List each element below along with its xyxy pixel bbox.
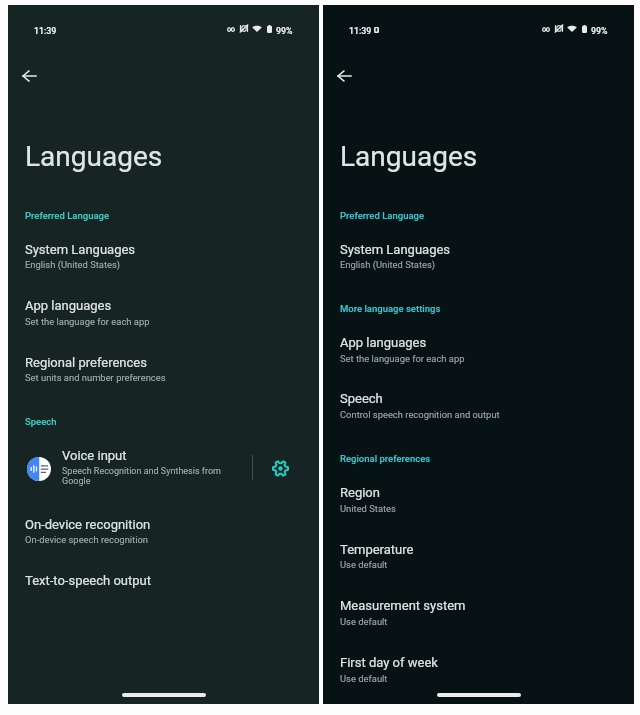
staticText: Use default: [340, 616, 388, 627]
button[interactable]: [323, 534, 634, 581]
staticText: Set the language for each app: [25, 316, 150, 327]
staticText: 11:39: [349, 26, 372, 36]
button[interactable]: [8, 565, 319, 595]
staticText: Region: [340, 485, 380, 500]
button[interactable]: Back: [328, 59, 361, 92]
staticText: United States: [340, 503, 396, 514]
button[interactable]: [323, 327, 634, 374]
staticText: Use default: [340, 673, 388, 684]
button[interactable]: Voice input settings: [258, 446, 302, 490]
staticText: Languages: [25, 140, 163, 173]
staticText: System Languages: [340, 242, 451, 257]
staticText: App languages: [25, 298, 112, 313]
staticText: System Languages: [25, 242, 136, 257]
staticText: Set the language for each app: [340, 353, 465, 364]
staticText: Measurement system: [340, 598, 466, 613]
staticText: On-device speech recognition: [25, 534, 148, 545]
staticText: More language settings: [340, 303, 441, 314]
button[interactable]: [8, 443, 244, 495]
button[interactable]: [8, 234, 319, 281]
staticText: Speech Recognition and Synthesis from Go…: [62, 466, 234, 486]
staticText: Preferred Language: [340, 210, 425, 221]
staticText: Regional preferences: [25, 355, 147, 370]
staticText: Set units and number preferences: [25, 372, 166, 383]
button[interactable]: [323, 234, 634, 281]
staticText: App languages: [340, 335, 427, 350]
staticText: Temperature: [340, 542, 414, 557]
staticText: Speech: [340, 391, 383, 406]
button[interactable]: [8, 509, 319, 556]
staticText: On-device recognition: [25, 517, 151, 532]
staticText: Languages: [340, 140, 478, 173]
staticText: Regional preferences: [340, 453, 431, 464]
button[interactable]: [8, 290, 319, 337]
staticText: 99%: [591, 26, 608, 36]
staticText: Voice input: [62, 448, 127, 463]
staticText: English (United States): [340, 259, 436, 270]
staticText: English (United States): [25, 259, 121, 270]
button[interactable]: [323, 590, 634, 637]
staticText: 11:39: [34, 26, 57, 36]
button[interactable]: [323, 477, 634, 524]
staticText: 99%: [276, 26, 293, 36]
staticText: First day of week: [340, 655, 438, 670]
button[interactable]: Back: [13, 59, 46, 92]
staticText: Speech: [25, 416, 57, 427]
button[interactable]: [323, 383, 634, 430]
button[interactable]: [8, 347, 319, 394]
button[interactable]: [323, 647, 634, 694]
staticText: Preferred Language: [25, 210, 110, 221]
staticText: Text-to-speech output: [25, 573, 151, 588]
staticText: Control speech recognition and output: [340, 409, 500, 420]
staticText: Use default: [340, 559, 388, 570]
